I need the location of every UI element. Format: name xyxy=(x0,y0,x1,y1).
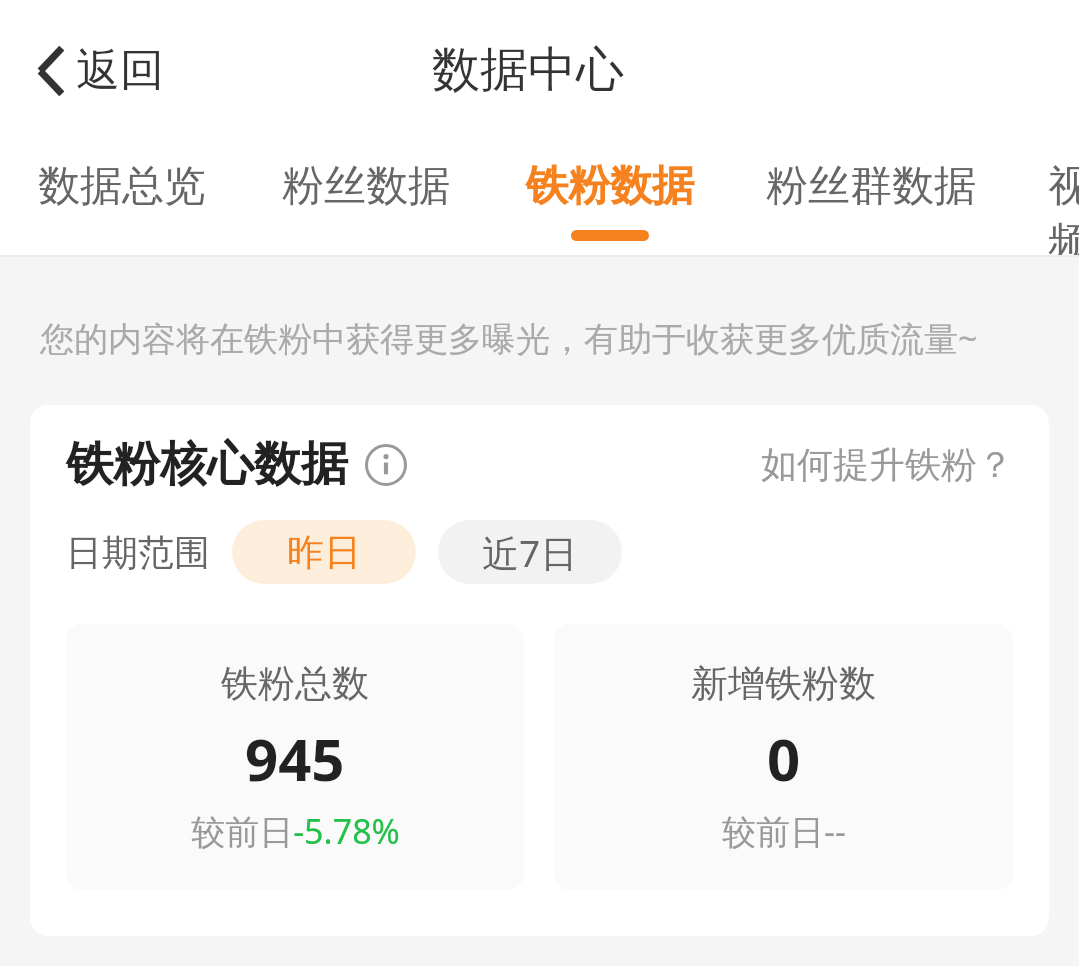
staticText: 近7日 xyxy=(482,527,578,578)
button[interactable]: 新增铁粉数 xyxy=(554,624,1013,890)
staticText: 铁粉核心数据 xyxy=(66,435,348,494)
button[interactable]: 近7日 xyxy=(438,520,622,584)
staticText: 数据总览 xyxy=(38,160,206,213)
button[interactable]: 如何提升铁粉？ xyxy=(761,442,1013,487)
button[interactable]: 铁粉数据 xyxy=(526,140,694,241)
staticText: 较前日-5.78% xyxy=(191,808,400,854)
staticText: 945 xyxy=(245,719,345,798)
staticText: 返回 xyxy=(76,43,164,98)
staticText: 粉丝数据 xyxy=(282,160,450,213)
staticText: 您的内容将在铁粉中获得更多曝光，有助于收获更多优质流量~ xyxy=(40,315,978,361)
button[interactable]: 粉丝群数据 xyxy=(766,140,976,241)
button[interactable]: 返回 xyxy=(28,35,172,106)
button[interactable]: 粉丝数据 xyxy=(282,140,450,241)
staticText: 视频数据 xyxy=(1048,160,1079,257)
staticText: 如何提升铁粉？ xyxy=(761,442,1013,487)
staticText: 数据中心 xyxy=(432,40,624,100)
staticText: 粉丝群数据 xyxy=(766,160,976,213)
staticText: 新增铁粉数 xyxy=(691,660,876,707)
staticText: 铁粉总数 xyxy=(221,660,369,707)
button[interactable]: 数据总览 xyxy=(38,140,206,241)
staticText: 铁粉数据 xyxy=(526,160,694,213)
button[interactable]: 说明 xyxy=(364,443,408,487)
staticText: 较前日-- xyxy=(722,808,846,854)
staticText: 昨日 xyxy=(287,529,361,576)
staticText: 日期范围 xyxy=(66,530,210,575)
button[interactable]: 昨日 xyxy=(232,520,416,584)
button[interactable]: 铁粉总数 xyxy=(66,624,524,890)
button[interactable]: 视频数据 xyxy=(1048,140,1079,257)
staticText: 0 xyxy=(767,719,801,798)
